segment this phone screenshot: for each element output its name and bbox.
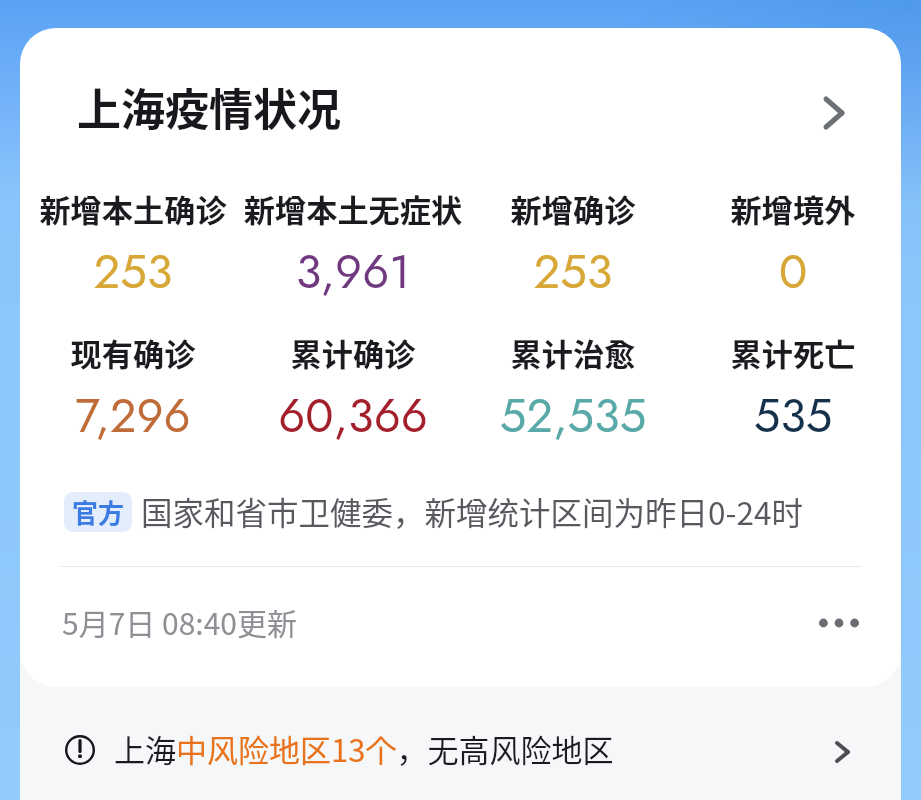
staticText: 253 — [463, 238, 683, 306]
staticText: 新增本土确诊 — [23, 186, 243, 231]
staticText: 新增境外 — [683, 186, 901, 231]
staticText: 253 — [23, 238, 243, 306]
staticText: 52,535 — [463, 382, 683, 450]
staticText: 累计确诊 — [243, 330, 463, 375]
staticText: 官方 — [72, 493, 125, 531]
staticText: 535 — [683, 382, 901, 450]
staticText: 3,961 — [243, 238, 463, 306]
staticText: 上海疫情状况 — [77, 75, 341, 139]
staticText: 累计死亡 — [683, 330, 901, 375]
staticText: 60,366 — [243, 382, 463, 450]
other: 更多 — [818, 616, 860, 630]
other: 查看上海疫情详情 — [818, 92, 848, 134]
staticText: 0 — [683, 238, 901, 306]
staticText: 7,296 — [23, 382, 243, 450]
button[interactable]: 上海中风险地区13个，无高风险地区 — [20, 700, 901, 800]
staticText: 5月7日 08:40更新 — [62, 600, 297, 643]
staticText: 新增确诊 — [463, 186, 683, 231]
staticText: 上海中风险地区13个，无高风险地区 — [114, 726, 614, 771]
staticText: 累计治愈 — [463, 330, 683, 375]
staticText: 新增本土无症状 — [243, 186, 463, 231]
button[interactable]: 官方 — [64, 492, 132, 532]
button[interactable]: 上海疫情状况 — [20, 46, 901, 132]
staticText: 现有确诊 — [23, 330, 243, 375]
other: 查看风险地区 — [832, 736, 854, 768]
button[interactable]: 5月7日 08:40更新 — [20, 580, 901, 660]
staticText: 国家和省市卫健委，新增统计区间为昨日0-24时 — [141, 488, 803, 534]
